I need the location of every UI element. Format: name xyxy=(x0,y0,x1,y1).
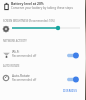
staticText: NETWORK ACTIVITY xyxy=(3,39,86,42)
button[interactable]: Brightness settings xyxy=(2,25,10,33)
staticText: Wi-Fi xyxy=(12,50,20,54)
staticText: Battery level at 20% xyxy=(11,1,44,5)
button[interactable]: Wi-Fi xyxy=(0,50,86,61)
button[interactable]: Brightness slider xyxy=(12,23,80,33)
button[interactable]: DISMISS xyxy=(60,86,81,96)
staticText: Recommended off xyxy=(12,54,37,58)
button[interactable]: Toggle xyxy=(65,51,81,60)
staticText: SCREEN BRIGHTNESS (Recommended: 10%) xyxy=(3,19,86,22)
staticText: Recommended off xyxy=(12,78,37,82)
button[interactable]: Auto-Rotate xyxy=(0,74,86,85)
staticText: DISMISS xyxy=(63,89,78,93)
staticText: AUTO ROTATE xyxy=(3,64,86,67)
staticText: Auto-Rotate xyxy=(12,74,30,78)
staticText: Conserve your battery by taking these st… xyxy=(11,6,86,10)
button[interactable]: Toggle xyxy=(65,75,81,84)
